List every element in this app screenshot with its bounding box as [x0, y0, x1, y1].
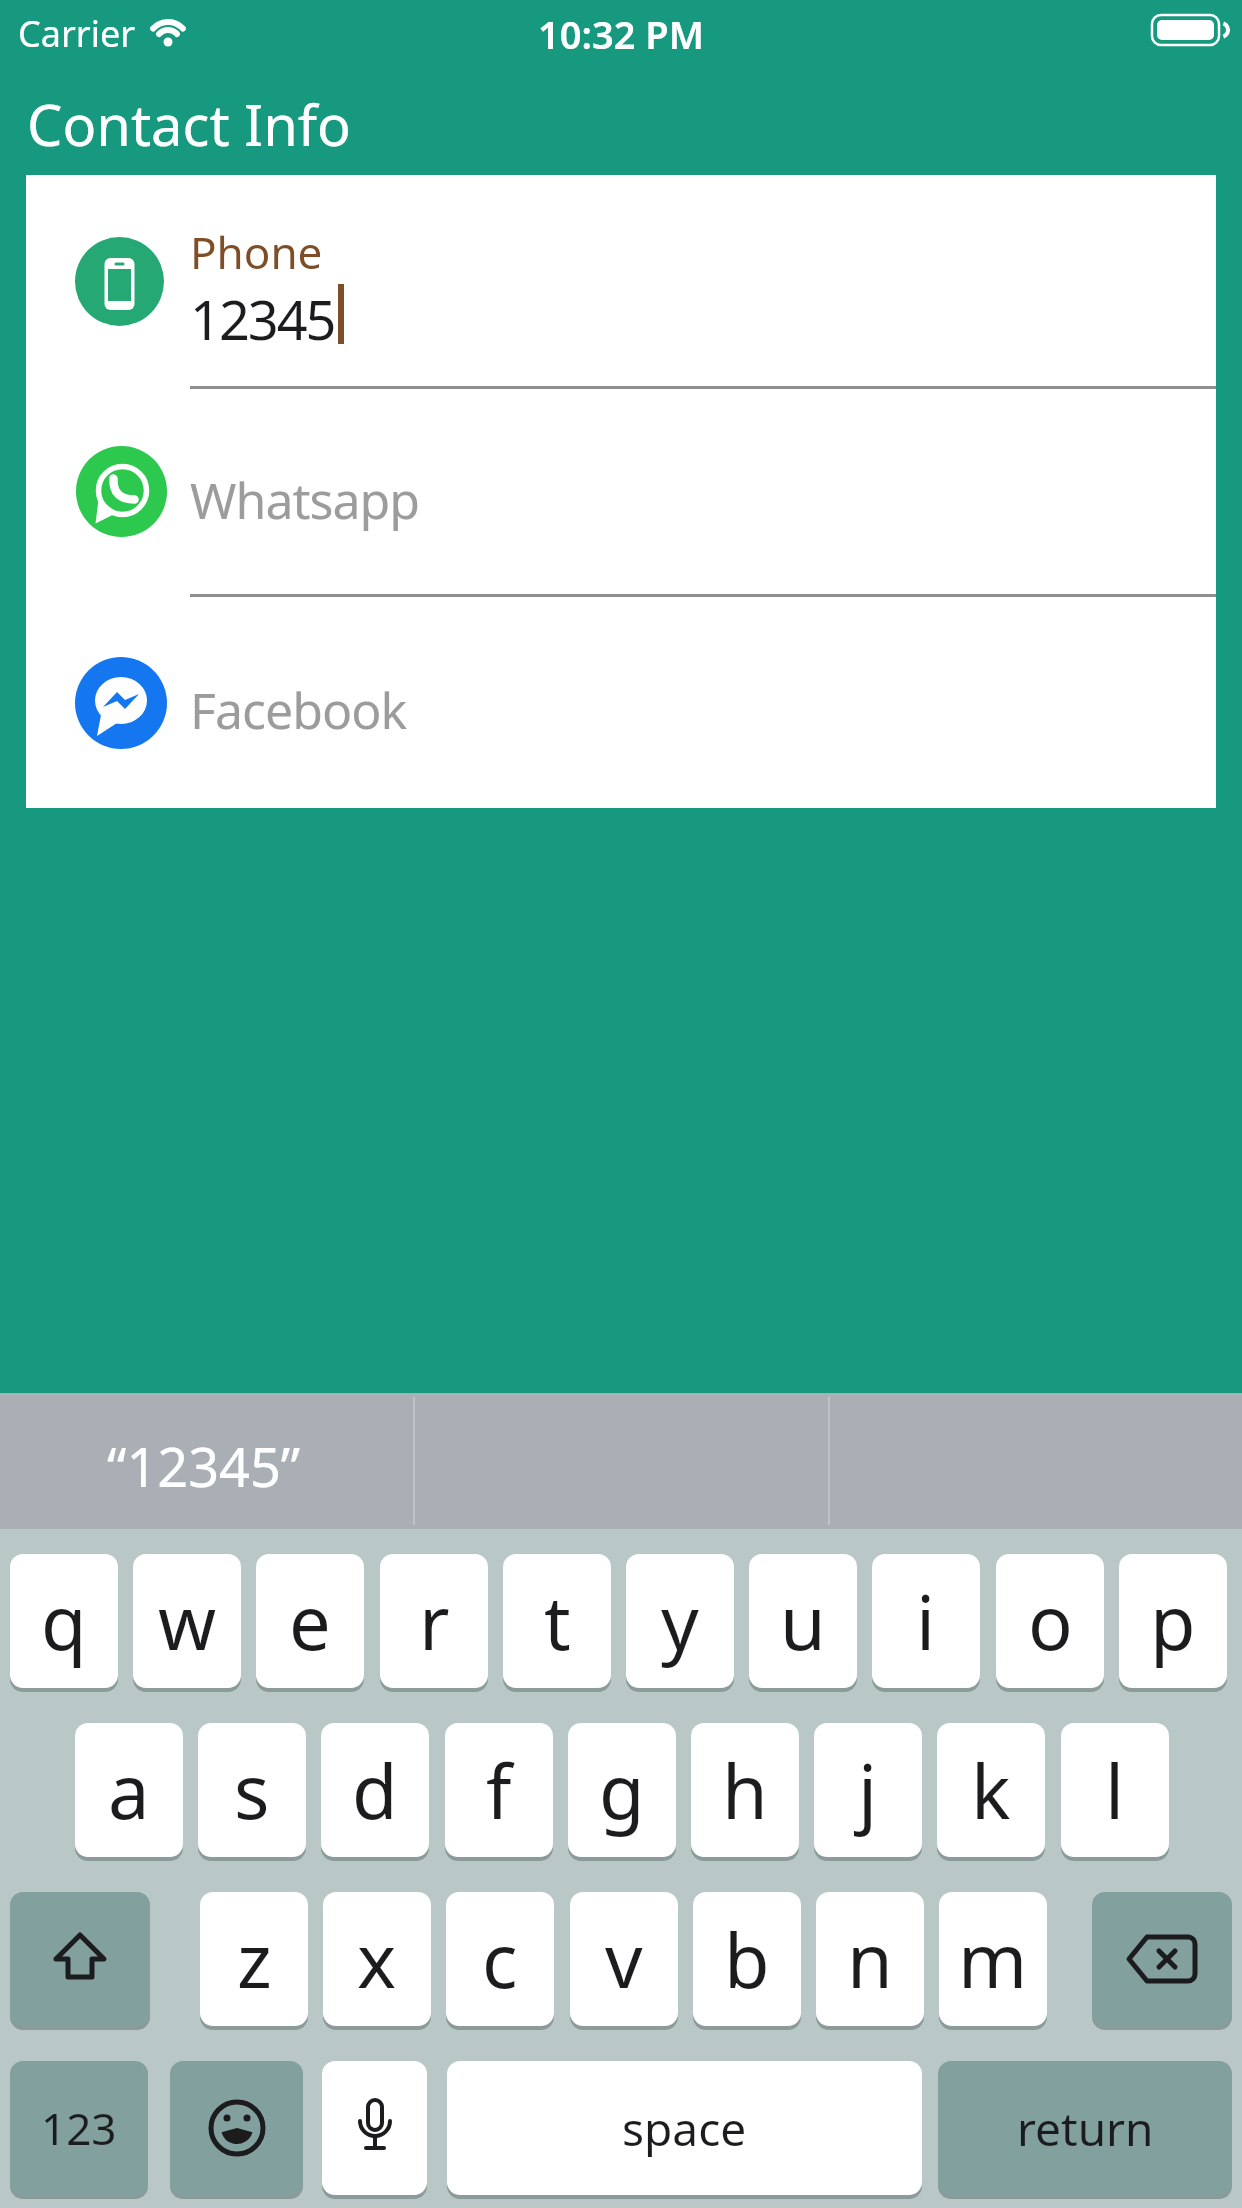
- button[interactable]: g: [568, 1723, 676, 1857]
- staticText: c: [482, 1909, 518, 2010]
- staticText: j: [858, 1740, 878, 1841]
- button[interactable]: [1092, 1892, 1232, 2026]
- button[interactable]: x: [323, 1892, 431, 2026]
- button[interactable]: j: [814, 1723, 922, 1857]
- button[interactable]: w: [133, 1554, 241, 1688]
- staticText: Phone: [190, 222, 323, 282]
- button[interactable]: q: [10, 1554, 118, 1688]
- staticText: 10:32 PM: [538, 8, 704, 60]
- button[interactable]: y: [626, 1554, 734, 1688]
- staticText: q: [41, 1571, 87, 1672]
- button[interactable]: “12345”: [0, 1393, 414, 1529]
- button[interactable]: [10, 1892, 150, 2026]
- staticText: f: [486, 1740, 512, 1841]
- staticText: e: [289, 1571, 331, 1672]
- staticText: b: [724, 1909, 770, 2010]
- staticText: r: [419, 1571, 450, 1672]
- button[interactable]: t: [503, 1554, 611, 1688]
- button[interactable]: a: [75, 1723, 183, 1857]
- button[interactable]: space: [447, 2061, 922, 2195]
- button[interactable]: p: [1119, 1554, 1227, 1688]
- button[interactable]: m: [939, 1892, 1047, 2026]
- staticText: u: [780, 1571, 826, 1672]
- staticText: “12345”: [107, 1429, 301, 1503]
- staticText: d: [352, 1740, 398, 1841]
- button[interactable]: c: [446, 1892, 554, 2026]
- staticText: t: [544, 1571, 571, 1672]
- staticText: Facebook: [190, 676, 407, 744]
- staticText: Contact Info: [27, 86, 351, 162]
- button[interactable]: f: [445, 1723, 553, 1857]
- button[interactable]: [170, 2061, 303, 2195]
- button[interactable]: z: [200, 1892, 308, 2026]
- button[interactable]: [26, 175, 1216, 388]
- staticText: a: [108, 1740, 150, 1841]
- staticText: s: [234, 1740, 270, 1841]
- staticText: 12345: [190, 282, 335, 356]
- button[interactable]: v: [570, 1892, 678, 2026]
- staticText: m: [958, 1909, 1028, 2010]
- button[interactable]: s: [198, 1723, 306, 1857]
- button[interactable]: [26, 388, 1216, 594]
- staticText: l: [1105, 1740, 1125, 1841]
- button[interactable]: k: [937, 1723, 1045, 1857]
- staticText: y: [661, 1571, 699, 1672]
- staticText: o: [1028, 1571, 1073, 1672]
- button[interactable]: h: [691, 1723, 799, 1857]
- button[interactable]: 123: [10, 2061, 148, 2195]
- staticText: z: [237, 1909, 272, 2010]
- button[interactable]: o: [996, 1554, 1104, 1688]
- staticText: Carrier: [18, 9, 136, 58]
- staticText: h: [722, 1740, 768, 1841]
- button[interactable]: e: [256, 1554, 364, 1688]
- button[interactable]: [322, 2061, 427, 2195]
- staticText: 123: [41, 2098, 117, 2158]
- button[interactable]: [76, 446, 167, 537]
- button[interactable]: [75, 237, 164, 326]
- staticText: i: [916, 1571, 936, 1672]
- staticText: x: [357, 1909, 397, 2010]
- button[interactable]: i: [872, 1554, 980, 1688]
- button[interactable]: r: [380, 1554, 488, 1688]
- button[interactable]: [75, 657, 167, 749]
- staticText: return: [1017, 2097, 1154, 2160]
- staticText: g: [599, 1740, 645, 1841]
- staticText: space: [622, 2097, 747, 2160]
- button[interactable]: u: [749, 1554, 857, 1688]
- button[interactable]: n: [816, 1892, 924, 2026]
- button[interactable]: return: [938, 2061, 1232, 2195]
- button[interactable]: b: [693, 1892, 801, 2026]
- staticText: p: [1150, 1571, 1196, 1672]
- staticText: v: [605, 1909, 643, 2010]
- staticText: Whatsapp: [190, 466, 419, 534]
- button[interactable]: [26, 594, 1216, 808]
- staticText: k: [971, 1740, 1011, 1841]
- button[interactable]: l: [1061, 1723, 1169, 1857]
- staticText: n: [847, 1909, 893, 2010]
- button[interactable]: d: [321, 1723, 429, 1857]
- staticText: w: [158, 1571, 217, 1672]
